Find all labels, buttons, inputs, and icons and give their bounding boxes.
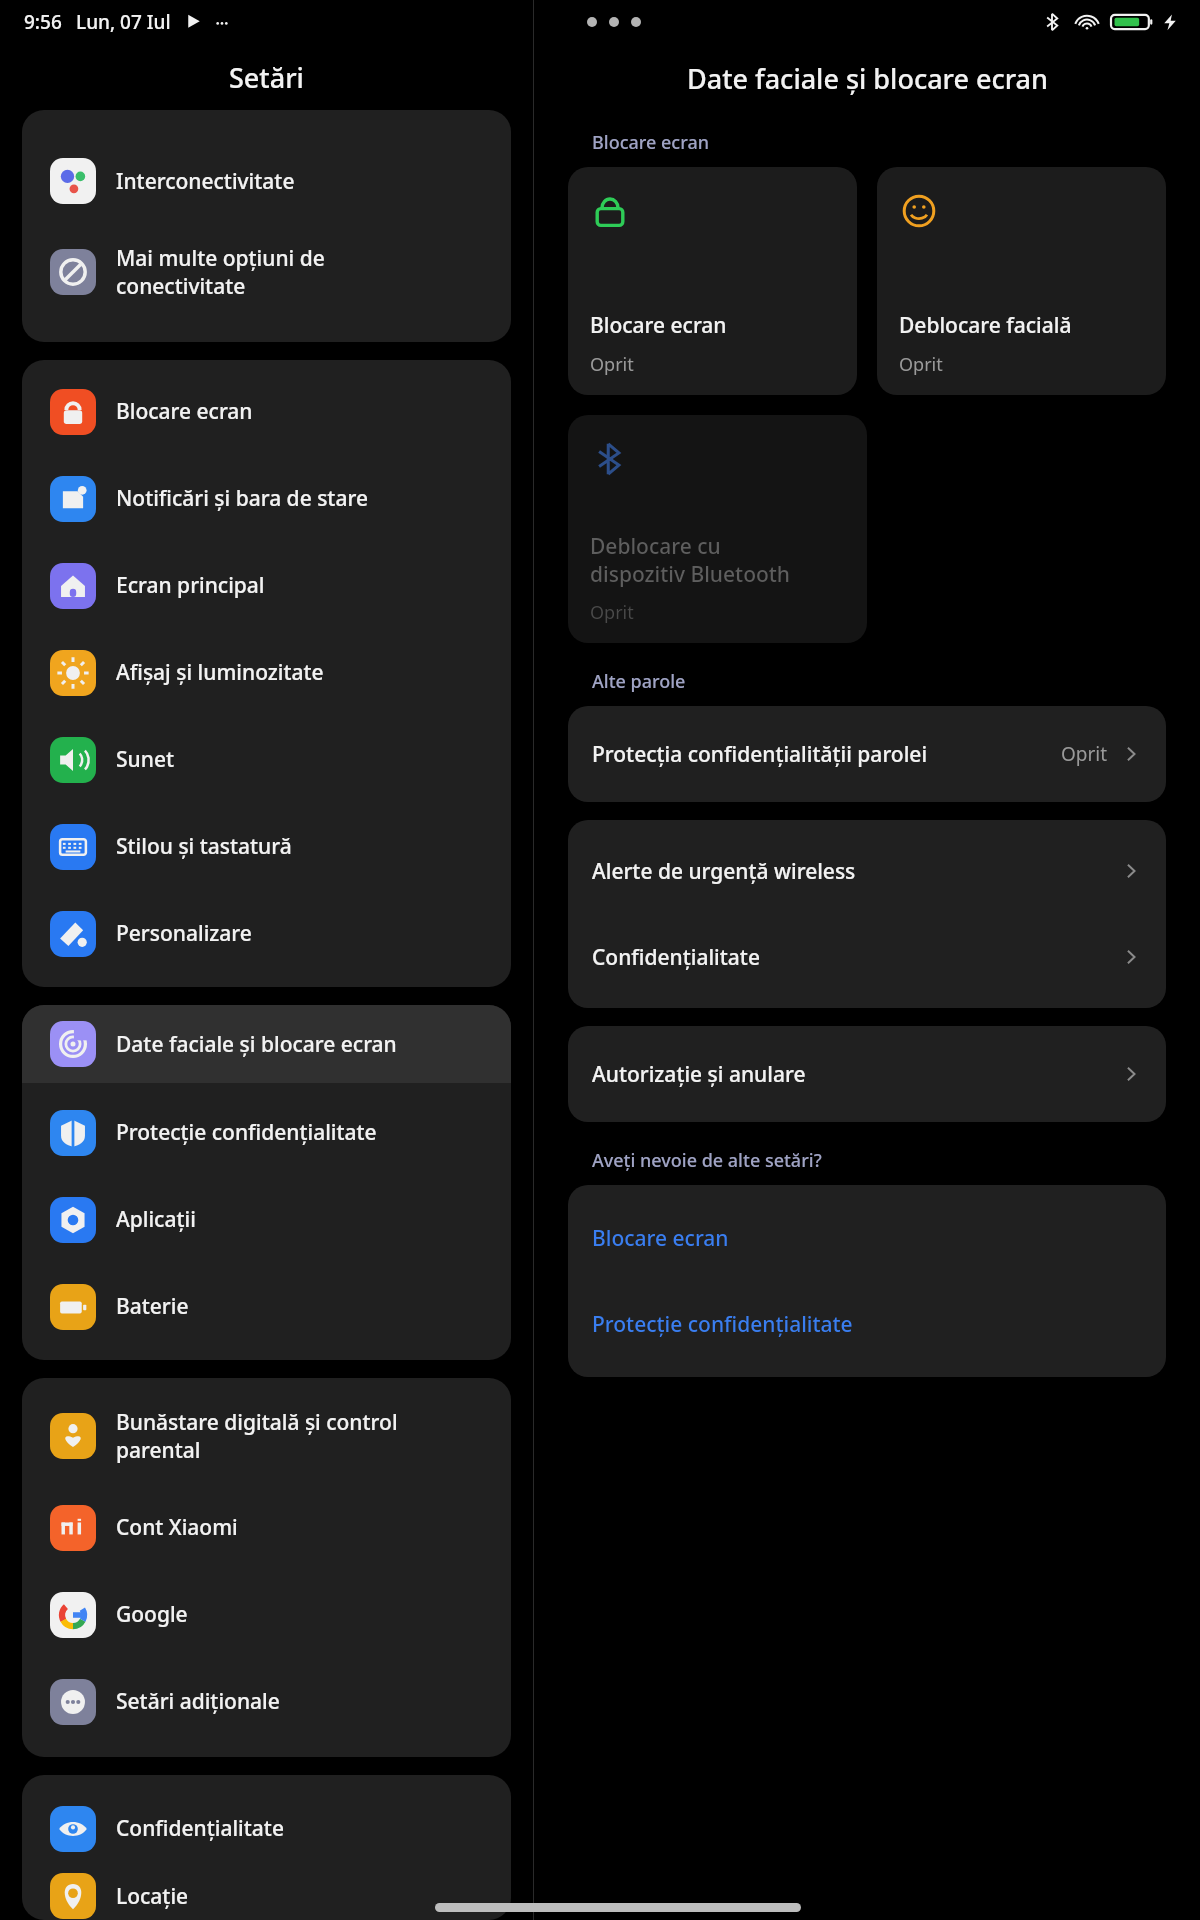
button[interactable]: Afișaj și luminozitate <box>22 629 511 716</box>
button[interactable]: Ecran principal <box>22 542 511 629</box>
staticText: 9:56 <box>24 9 62 35</box>
button[interactable]: Setări adiționale <box>22 1658 511 1745</box>
button[interactable]: Autorizație și anulare <box>568 1026 1166 1122</box>
staticText: Google <box>116 1600 188 1629</box>
button[interactable]: Protecție confidențialitate <box>22 1089 511 1176</box>
staticText: Oprit <box>899 352 943 377</box>
staticText: Lun, 07 Iul <box>76 9 171 35</box>
staticText: Protecție confidențialitate <box>592 1310 853 1339</box>
button[interactable]: Blocare ecran <box>568 167 857 395</box>
staticText: Baterie <box>116 1292 189 1321</box>
staticText: Notificări și bara de stare <box>116 484 368 513</box>
staticText: Deblocare cu dispozitiv Bluetooth <box>590 532 791 588</box>
staticText: Protecție confidențialitate <box>116 1118 377 1147</box>
staticText: Oprit <box>590 352 634 377</box>
staticText: Protecția confidențialității parolei <box>592 740 1061 769</box>
button[interactable]: Confidențialitate <box>22 1785 511 1872</box>
staticText: Alte parole <box>592 669 686 694</box>
button[interactable]: Baterie <box>22 1263 511 1350</box>
staticText: Mai multe opțiuni de conectivitate <box>116 244 325 300</box>
staticText: Deblocare facială <box>899 311 1072 340</box>
button[interactable]: Date faciale și blocare ecran <box>22 1005 511 1083</box>
staticText: Interconectivitate <box>116 167 295 196</box>
staticText: Blocare ecran <box>590 311 727 340</box>
staticText: Aveți nevoie de alte setări? <box>592 1148 822 1173</box>
staticText: Bunăstare digitală și control parental <box>116 1408 398 1464</box>
staticText: Afișaj și luminozitate <box>116 658 324 687</box>
button[interactable]: Bunăstare digitală și control parental <box>22 1388 511 1484</box>
button[interactable]: Mai multe opțiuni de conectivitate <box>22 224 511 320</box>
button[interactable]: Stilou și tastatură <box>22 803 511 890</box>
staticText: Blocare ecran <box>592 130 710 155</box>
button[interactable]: Google <box>22 1571 511 1658</box>
staticText: Locație <box>116 1882 189 1911</box>
staticText: Personalizare <box>116 919 252 948</box>
button[interactable]: Alerte de urgență wireless <box>568 828 1166 914</box>
staticText: Aplicații <box>116 1205 196 1234</box>
staticText: Blocare ecran <box>116 397 253 426</box>
button[interactable]: Interconectivitate <box>22 138 511 224</box>
staticText: Setări <box>229 59 304 96</box>
staticText: Alerte de urgență wireless <box>592 857 1120 886</box>
button[interactable]: Protecția confidențialității parolei <box>568 706 1166 802</box>
button[interactable]: Blocare ecran <box>568 1195 1166 1281</box>
staticText: Confidențialitate <box>592 943 1120 972</box>
button[interactable]: Notificări și bara de stare <box>22 455 511 542</box>
staticText: Confidențialitate <box>116 1814 284 1843</box>
staticText: Oprit <box>1061 741 1108 767</box>
button[interactable]: Protecție confidențialitate <box>568 1281 1166 1367</box>
button[interactable]: Sunet <box>22 716 511 803</box>
staticText: Oprit <box>590 600 634 625</box>
staticText: Autorizație și anulare <box>592 1060 1120 1089</box>
button[interactable]: Aplicații <box>22 1176 511 1263</box>
staticText: Date faciale și blocare ecran <box>116 1030 397 1059</box>
button[interactable]: Deblocare facială <box>877 167 1166 395</box>
staticText: Blocare ecran <box>592 1224 729 1253</box>
button[interactable]: Locație <box>22 1872 511 1920</box>
staticText: Setări adiționale <box>116 1687 280 1716</box>
staticText: Cont Xiaomi <box>116 1513 238 1542</box>
button[interactable]: Cont Xiaomi <box>22 1484 511 1571</box>
staticText: Sunet <box>116 745 174 774</box>
button[interactable]: Deblocare cu dispozitiv Bluetooth <box>568 415 867 643</box>
staticText: Stilou și tastatură <box>116 832 292 861</box>
staticText: Date faciale și blocare ecran <box>687 60 1048 97</box>
button[interactable]: Confidențialitate <box>568 914 1166 1000</box>
staticText: Ecran principal <box>116 571 265 600</box>
button[interactable]: Blocare ecran <box>22 368 511 455</box>
button[interactable]: Personalizare <box>22 890 511 977</box>
